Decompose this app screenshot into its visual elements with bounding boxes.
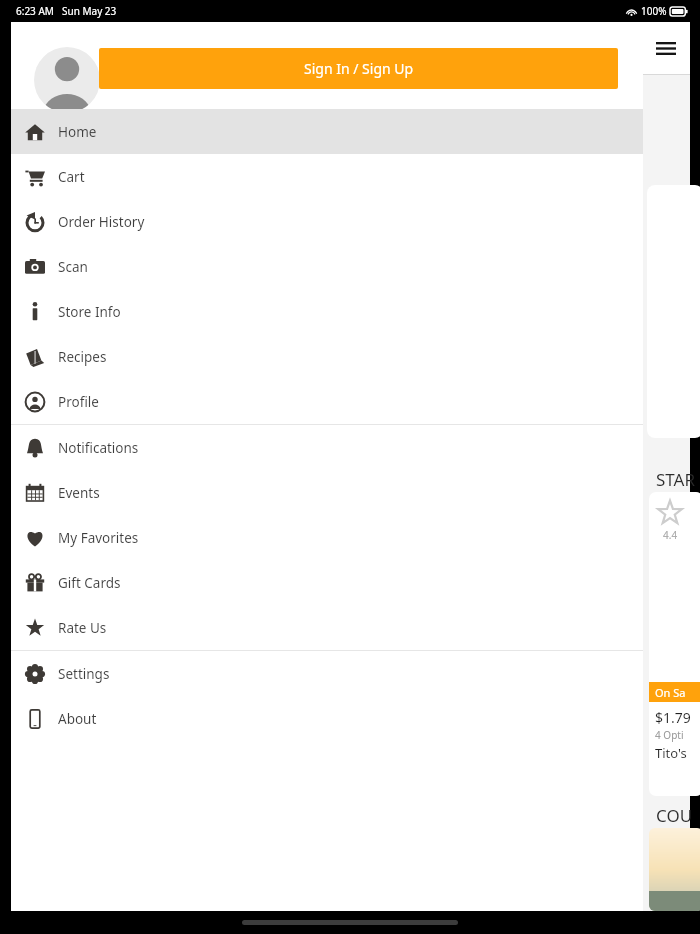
staticText: Sign In / Sign Up bbox=[304, 59, 414, 78]
button[interactable]: Profile avatar bbox=[34, 47, 100, 113]
staticText: 6:23 AM bbox=[16, 4, 54, 18]
staticText: My Favorites bbox=[58, 529, 139, 547]
button[interactable]: Notifications bbox=[11, 425, 643, 470]
staticText: Home bbox=[58, 123, 97, 141]
staticText: Notifications bbox=[58, 439, 139, 457]
button[interactable]: About bbox=[11, 696, 643, 741]
button[interactable]: Home bbox=[11, 109, 643, 154]
staticText: Order History bbox=[58, 213, 145, 231]
staticText: Gift Cards bbox=[58, 574, 121, 592]
button[interactable]: My Favorites bbox=[11, 515, 643, 560]
staticText: Tito's bbox=[655, 744, 687, 762]
staticText: 100% bbox=[641, 4, 667, 18]
staticText: 4 Opti bbox=[655, 728, 684, 742]
staticText: Settings bbox=[58, 665, 110, 683]
staticText: Cart bbox=[58, 168, 85, 186]
button[interactable]: Gift Cards bbox=[11, 560, 643, 605]
staticText: Rate Us bbox=[58, 619, 107, 637]
button[interactable]: Open navigation menu bbox=[649, 31, 683, 65]
staticText: Profile bbox=[58, 393, 99, 411]
staticText: STAR bbox=[656, 468, 696, 491]
staticText: Events bbox=[58, 484, 100, 502]
staticText: On Sa bbox=[655, 685, 686, 700]
button[interactable]: Events bbox=[11, 470, 643, 515]
staticText: Recipes bbox=[58, 348, 107, 366]
button[interactable]: Order History bbox=[11, 199, 643, 244]
button[interactable]: Settings bbox=[11, 651, 643, 696]
staticText: Sun May 23 bbox=[62, 4, 117, 18]
button[interactable]: Sign In / Sign Up bbox=[99, 48, 618, 89]
button[interactable]: Rate Us bbox=[11, 605, 643, 650]
button[interactable]: Scan bbox=[11, 244, 643, 289]
button[interactable]: Store Info bbox=[11, 289, 643, 334]
staticText: $1.79 bbox=[655, 708, 691, 727]
staticText: 4.4 bbox=[663, 528, 678, 542]
button[interactable]: Cart bbox=[11, 154, 643, 199]
staticText: Scan bbox=[58, 258, 88, 276]
staticText: COU bbox=[656, 804, 693, 827]
staticText: Store Info bbox=[58, 303, 121, 321]
button[interactable]: Profile bbox=[11, 379, 643, 424]
button[interactable]: Recipes bbox=[11, 334, 643, 379]
staticText: About bbox=[58, 710, 97, 728]
